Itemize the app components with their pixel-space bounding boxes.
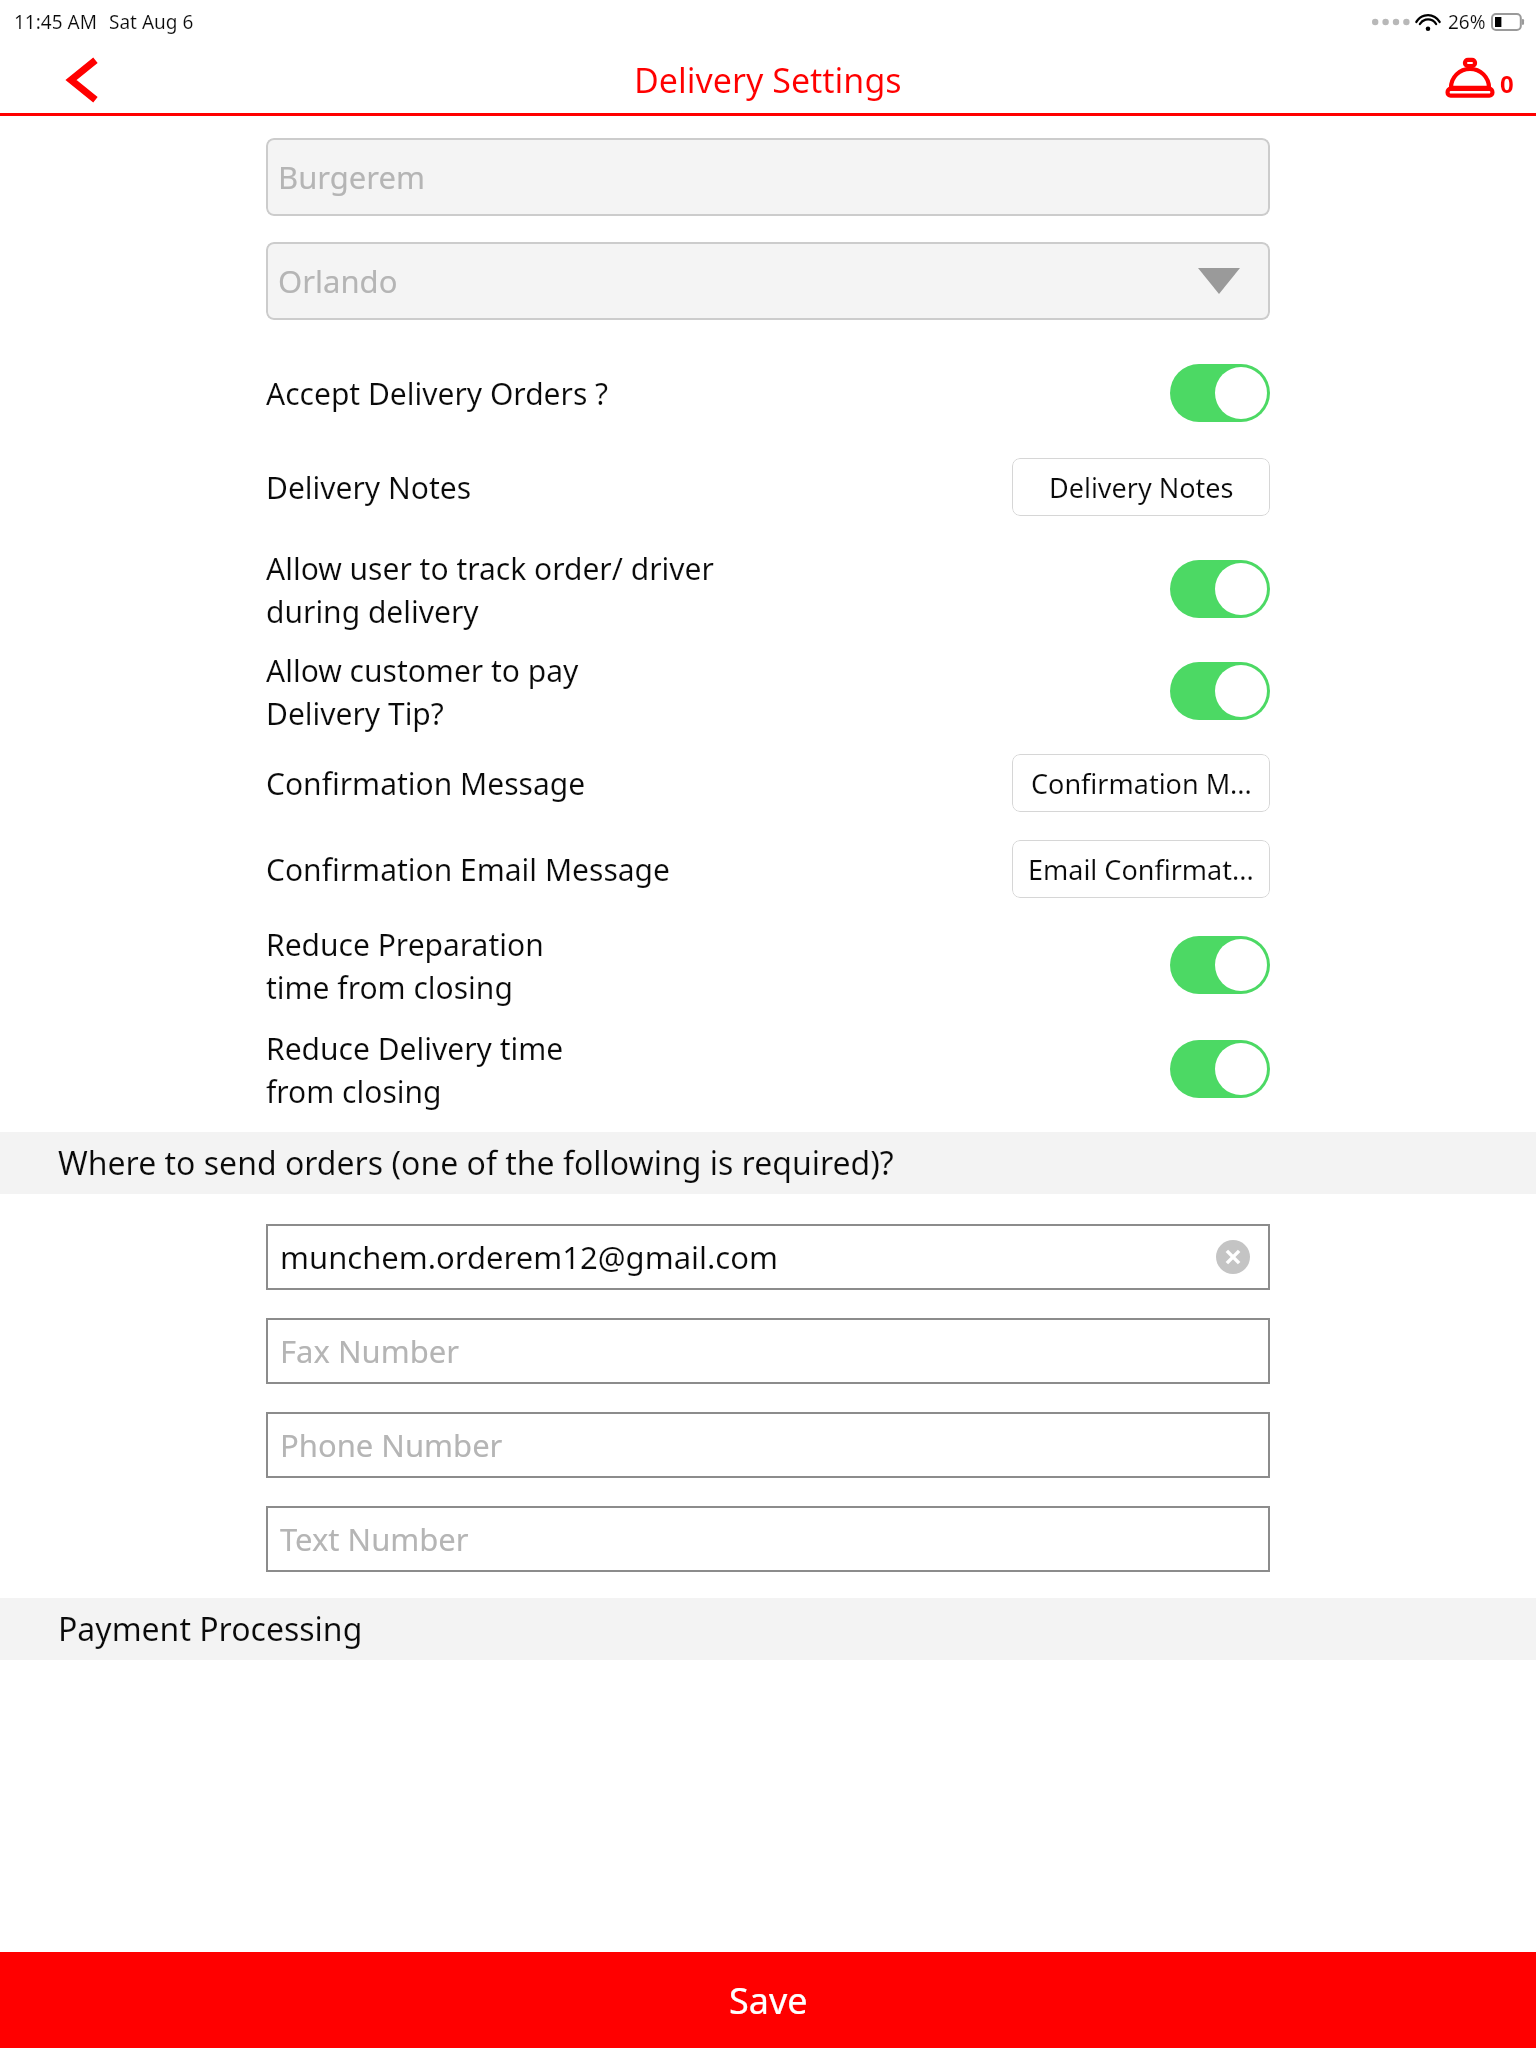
staticText: Reduce Delivery time bbox=[266, 1028, 564, 1069]
button[interactable]: Toggle on bbox=[1170, 936, 1270, 994]
staticText: Sat Aug 6 bbox=[109, 9, 194, 35]
button[interactable]: Clear text bbox=[1216, 1240, 1250, 1274]
staticText: Allow customer to pay bbox=[266, 650, 579, 691]
button[interactable]: Orlando bbox=[266, 242, 1270, 320]
staticText: Allow user to track order/ driver bbox=[266, 548, 714, 589]
staticText: Payment Processing bbox=[58, 1607, 363, 1651]
staticText: Delivery Settings bbox=[634, 57, 902, 103]
staticText: Delivery Tip? bbox=[266, 693, 444, 732]
staticText: Phone Number bbox=[280, 1424, 503, 1466]
staticText: Reduce Preparation bbox=[266, 924, 544, 965]
button[interactable]: Confirmation M... bbox=[1012, 754, 1270, 812]
staticText: munchem.orderem12@gmail.com bbox=[280, 1236, 778, 1278]
button[interactable]: Phone Number bbox=[266, 1412, 1270, 1478]
staticText: time from closing bbox=[266, 967, 513, 1006]
button[interactable]: Text Number bbox=[266, 1506, 1270, 1572]
staticText: Email Confirmat... bbox=[1028, 851, 1254, 888]
staticText: Confirmation Message bbox=[266, 763, 586, 804]
staticText: Burgerem bbox=[278, 156, 426, 198]
staticText: Delivery Notes bbox=[1049, 469, 1234, 506]
staticText: Where to send orders (one of the followi… bbox=[58, 1141, 894, 1185]
button[interactable]: Toggle on bbox=[1170, 560, 1270, 618]
button[interactable]: Email Confirmat... bbox=[1012, 840, 1270, 898]
staticText: 26% bbox=[1448, 9, 1486, 35]
button[interactable]: Save bbox=[0, 1952, 1536, 2048]
staticText: Accept Delivery Orders ? bbox=[266, 373, 609, 414]
staticText: Confirmation M... bbox=[1031, 765, 1252, 802]
staticText: 11:45 AM bbox=[14, 9, 97, 35]
staticText: from closing bbox=[266, 1071, 442, 1110]
staticText: during delivery bbox=[266, 591, 479, 630]
staticText: Save bbox=[729, 1976, 808, 2025]
button[interactable]: Fax Number bbox=[266, 1318, 1270, 1384]
staticText: Delivery Notes bbox=[266, 467, 472, 508]
button[interactable]: Orders bbox=[1442, 52, 1514, 108]
staticText: Text Number bbox=[280, 1518, 469, 1560]
button[interactable]: Toggle on bbox=[1170, 662, 1270, 720]
button[interactable]: Back bbox=[58, 54, 110, 106]
button[interactable]: Delivery Notes bbox=[1012, 458, 1270, 516]
staticText: Fax Number bbox=[280, 1330, 459, 1372]
button[interactable]: Toggle on bbox=[1170, 1040, 1270, 1098]
button[interactable]: Toggle on bbox=[1170, 364, 1270, 422]
staticText: Orlando bbox=[278, 260, 398, 302]
staticText: Confirmation Email Message bbox=[266, 849, 670, 890]
button[interactable]: munchem.orderem12@gmail.com bbox=[266, 1224, 1270, 1290]
button[interactable]: Burgerem bbox=[266, 138, 1270, 216]
staticText: 0 bbox=[1500, 67, 1514, 100]
